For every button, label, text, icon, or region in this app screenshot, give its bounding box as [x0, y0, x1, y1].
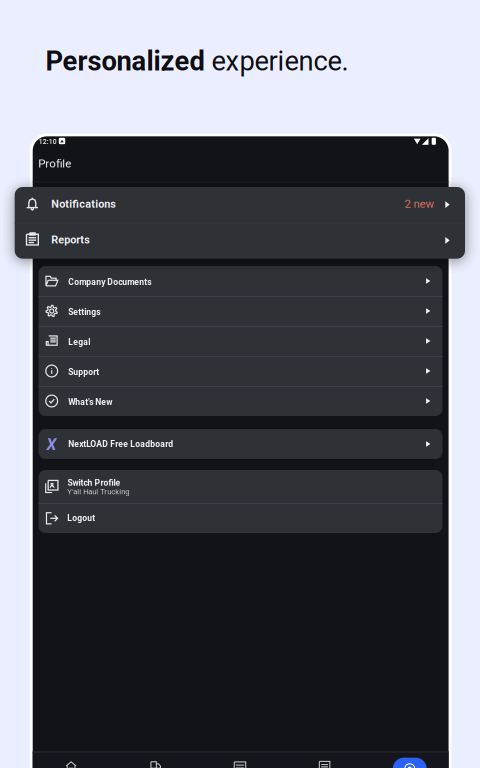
staticText: Settings [68, 307, 100, 317]
button[interactable]: Documents [319, 761, 330, 768]
staticText: Personalized [46, 45, 205, 77]
staticText: Y'all Haul Trucking [67, 487, 129, 496]
staticText: NextLOAD Free Loadboard [68, 439, 173, 449]
staticText: Notifications [51, 198, 116, 210]
button[interactable]: Support [39, 356, 442, 386]
button[interactable]: Payments [234, 761, 246, 768]
button[interactable]: Logout [39, 503, 442, 533]
staticText: What's New [68, 397, 112, 407]
staticText: X [47, 435, 57, 454]
staticText: Profile [38, 157, 71, 170]
staticText: Logout [67, 513, 95, 523]
staticText: experience. [205, 45, 349, 77]
button[interactable]: Company Documents [39, 266, 442, 296]
button[interactable]: Notifications [15, 187, 465, 223]
button[interactable]: Home [66, 761, 76, 768]
button[interactable]: What's New [39, 386, 442, 416]
staticText: Switch Profile [67, 478, 120, 488]
button[interactable]: Reports [15, 223, 465, 259]
staticText: Support [68, 367, 99, 377]
staticText: Legal [68, 337, 90, 347]
button[interactable]: X [39, 429, 442, 459]
button[interactable]: Loads [150, 761, 161, 768]
button[interactable]: Legal [39, 326, 442, 356]
staticText: Company Documents [68, 277, 151, 287]
staticText: Reports [51, 233, 90, 246]
button[interactable]: Switch Profile [39, 470, 442, 503]
button[interactable]: Find loads [393, 758, 427, 768]
staticText: 12:10 [39, 138, 57, 146]
button[interactable]: Settings [39, 296, 442, 326]
staticText: 2 new [405, 197, 435, 210]
